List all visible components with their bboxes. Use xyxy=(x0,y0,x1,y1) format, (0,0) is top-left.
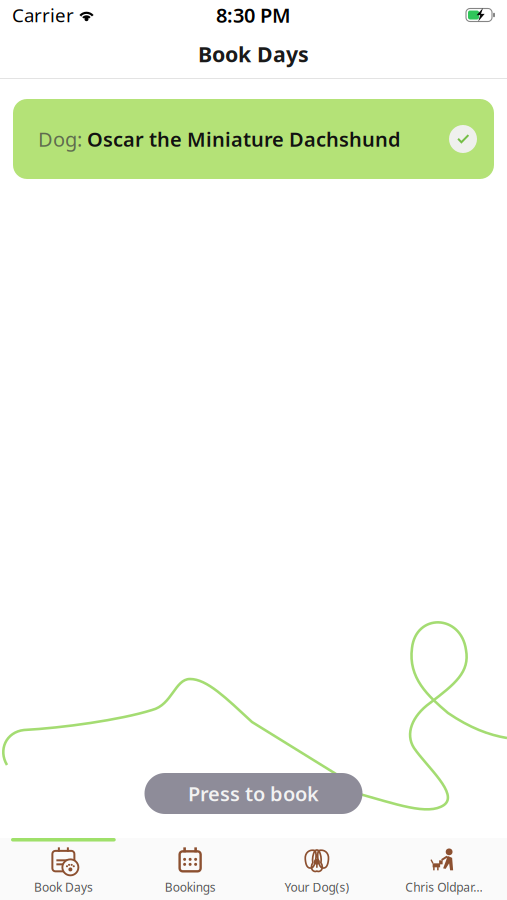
staticText: Bookings xyxy=(165,879,216,895)
staticText: Carrier xyxy=(12,3,74,27)
staticText: Dog: xyxy=(38,126,87,152)
staticText: Chris Oldpar… xyxy=(405,879,482,895)
button[interactable]: Press to book xyxy=(144,773,362,814)
button[interactable]: Dog: xyxy=(0,79,507,179)
button[interactable]: Book Days xyxy=(0,838,127,900)
staticText: Press to book xyxy=(188,780,319,807)
staticText: Oscar the Miniature Dachshund xyxy=(87,126,401,152)
staticText: Book Days xyxy=(34,879,93,895)
button[interactable]: Bookings xyxy=(127,838,254,900)
staticText: 8:30 PM xyxy=(216,2,291,28)
button[interactable]: Your Dog(s) xyxy=(253,838,380,900)
staticText: Book Days xyxy=(198,40,309,68)
button[interactable]: Chris Oldpar… xyxy=(380,838,507,900)
staticText: Your Dog(s) xyxy=(284,879,349,895)
